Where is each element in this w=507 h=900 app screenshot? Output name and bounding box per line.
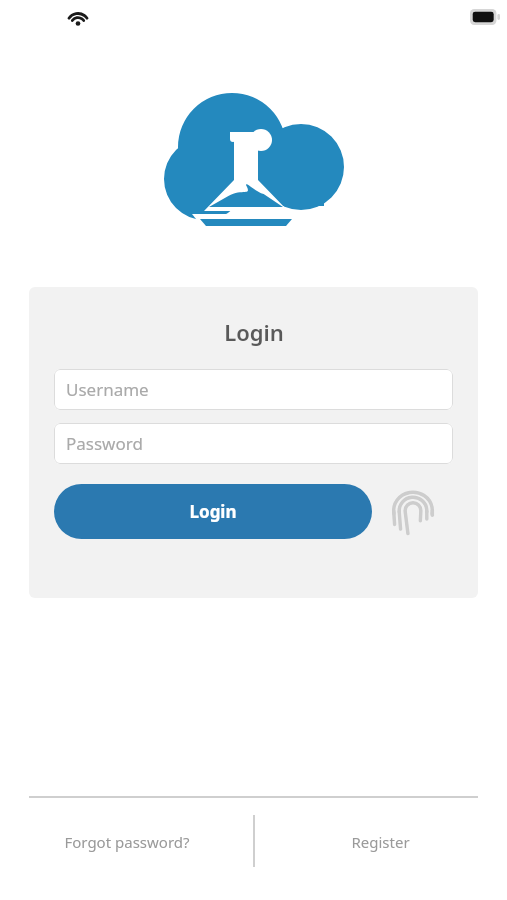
button[interactable]: Login with fingerprint — [385, 484, 440, 539]
staticText: Login — [224, 317, 284, 347]
staticText: Username — [66, 378, 149, 401]
staticText: Login — [189, 500, 237, 523]
button[interactable]: Forgot password? — [0, 812, 253, 872]
staticText: Password — [66, 432, 143, 455]
staticText: Forgot password? — [64, 832, 190, 852]
button[interactable]: Register — [253, 812, 507, 872]
staticText: Register — [351, 832, 410, 852]
button[interactable]: Username — [54, 369, 453, 410]
button[interactable]: Password — [54, 423, 453, 464]
button[interactable]: Login — [54, 484, 372, 539]
